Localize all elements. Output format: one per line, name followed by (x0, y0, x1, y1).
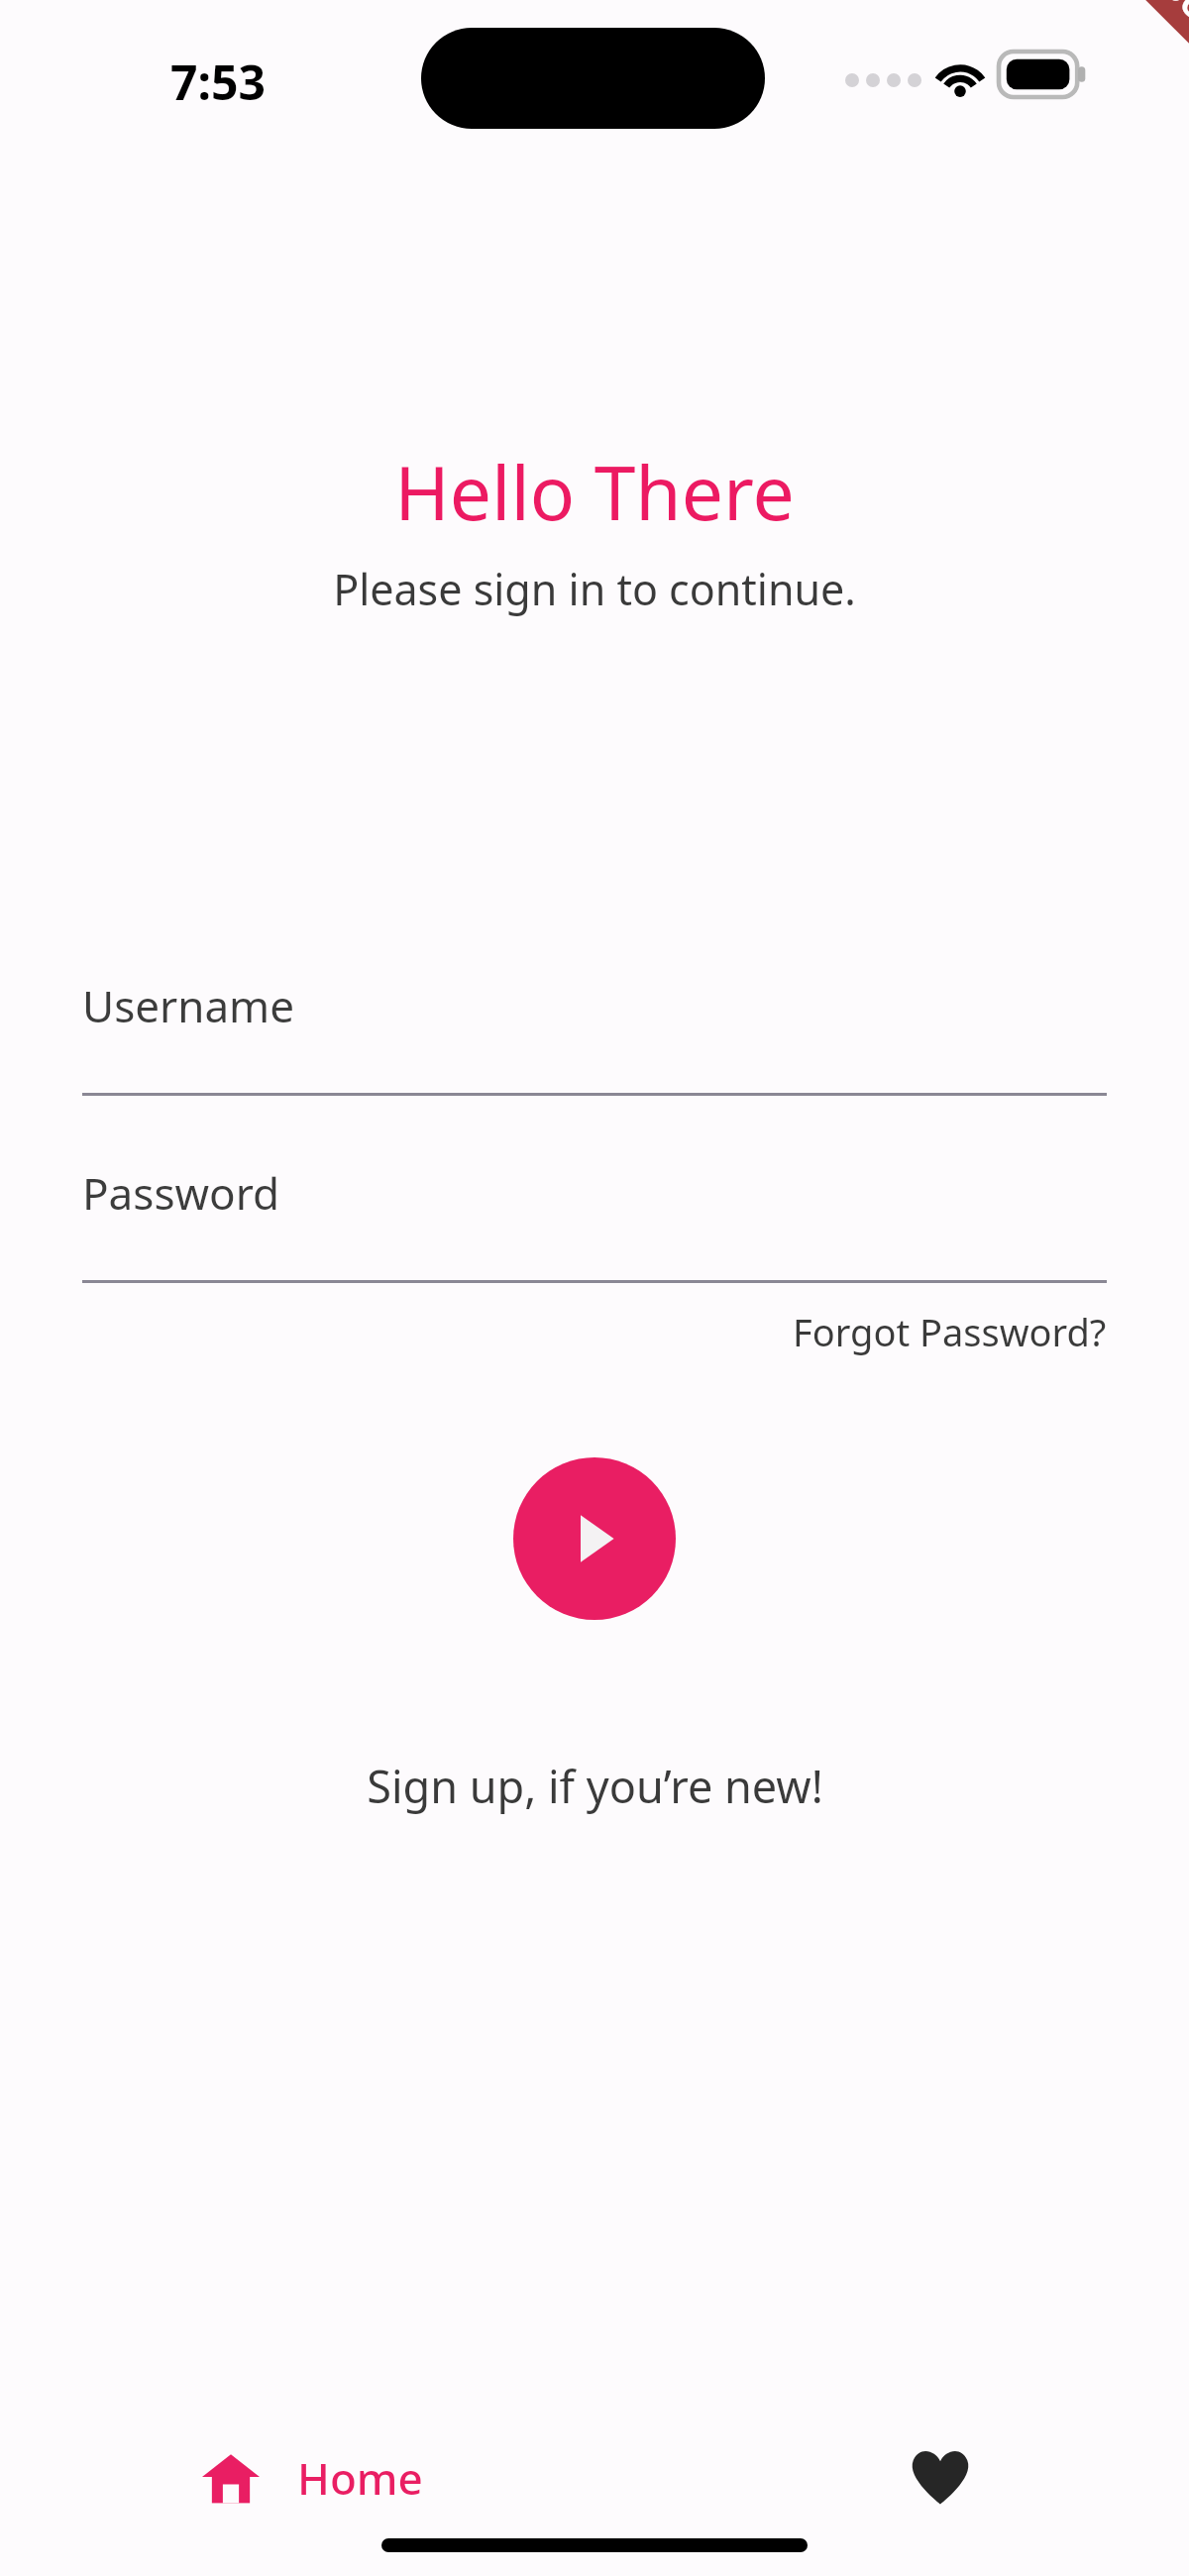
staticText: Forgot Password? (793, 1306, 1107, 1357)
button[interactable]: Home (202, 2448, 423, 2508)
staticText: Please sign in to continue. (333, 560, 856, 618)
button[interactable]: Sign up, if you’re new! (367, 1756, 823, 1816)
staticText: 7:53 (170, 50, 266, 114)
button[interactable]: Favorites (910, 2449, 971, 2505)
staticText: Hello There (394, 441, 795, 542)
staticText: Sign up, if you’re new! (367, 1756, 823, 1816)
staticText: DEBUG (1112, 0, 1189, 28)
button[interactable]: Username (82, 976, 1107, 1096)
button[interactable]: Sign in (513, 1457, 676, 1620)
button[interactable]: Password (82, 1163, 1107, 1283)
staticText: Username (82, 976, 295, 1035)
staticText: Password (82, 1163, 280, 1223)
staticText: Home (297, 2448, 423, 2508)
button[interactable]: Forgot Password? (82, 1306, 1107, 1357)
